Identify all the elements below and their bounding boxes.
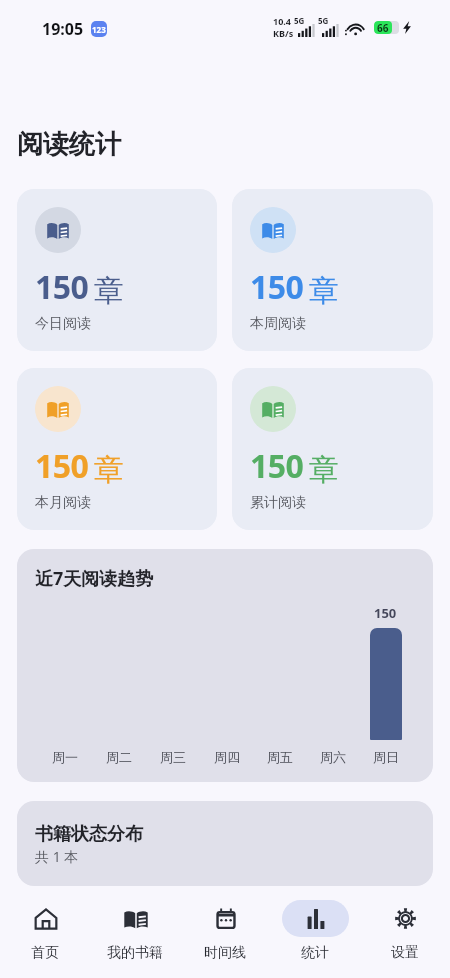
staticText: 书籍状态分布	[35, 823, 143, 846]
staticText: 统计	[301, 944, 329, 962]
button[interactable]: 150	[17, 189, 217, 351]
staticText: 本月阅读	[35, 494, 91, 512]
staticText: 本周阅读	[250, 315, 306, 333]
staticText: 19:05	[42, 18, 84, 40]
staticText: 时间线	[204, 944, 246, 962]
staticText: 150	[374, 604, 397, 622]
button[interactable]: 时间线	[180, 886, 270, 978]
button[interactable]: 我的书籍	[90, 886, 180, 978]
staticText: 首页	[31, 944, 59, 962]
staticText: 共 1 本	[35, 847, 79, 866]
staticText: 我的书籍	[107, 944, 163, 962]
button[interactable]: 首页	[0, 886, 90, 978]
staticText: 章	[94, 272, 124, 310]
other: 时间线	[215, 908, 237, 930]
staticText: 150	[35, 444, 89, 488]
staticText: 周二	[106, 749, 132, 765]
staticText: 周四	[214, 749, 240, 765]
staticText: 周五	[267, 749, 293, 765]
staticText: 今日阅读	[35, 315, 91, 333]
staticText: 10.4	[273, 15, 291, 27]
button[interactable]: 统计	[270, 886, 360, 978]
staticText: 阅读统计	[17, 128, 121, 161]
other: 统计	[306, 909, 326, 929]
staticText: 周三	[160, 749, 186, 765]
button[interactable]: 150	[17, 368, 217, 530]
staticText: KB/s	[273, 27, 294, 39]
staticText: 150	[250, 444, 304, 488]
staticText: 章	[94, 451, 124, 489]
staticText: 周六	[320, 749, 346, 765]
staticText: 设置	[391, 944, 419, 962]
other: 我的书籍	[123, 908, 149, 930]
staticText: 123	[92, 24, 106, 35]
staticText: 5G	[294, 15, 305, 26]
staticText: 章	[309, 451, 339, 489]
staticText: 累计阅读	[250, 494, 306, 512]
staticText: 150	[250, 265, 304, 309]
button[interactable]: 设置	[360, 886, 450, 978]
staticText: 5G	[318, 15, 329, 26]
staticText: 66	[377, 21, 389, 34]
staticText: 周日	[373, 749, 399, 765]
staticText: 章	[309, 272, 339, 310]
button[interactable]: 150	[232, 368, 433, 530]
staticText: 近7天阅读趋势	[35, 566, 154, 591]
other: 设置	[394, 907, 417, 930]
button[interactable]: 150	[232, 189, 433, 351]
other: 首页	[35, 908, 57, 930]
staticText: 周一	[52, 749, 78, 765]
staticText: 150	[35, 265, 89, 309]
